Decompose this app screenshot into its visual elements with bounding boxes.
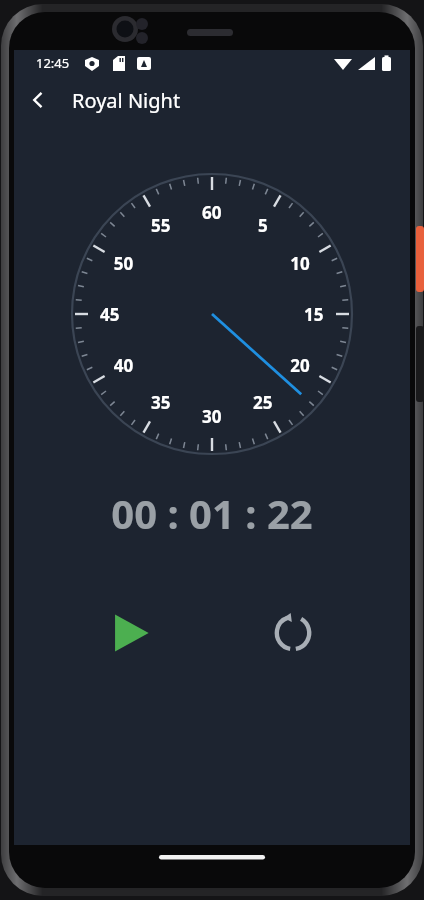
staticText: Royal Night <box>72 87 181 114</box>
button[interactable]: Reset <box>262 602 324 664</box>
button[interactable]: Back <box>14 76 62 124</box>
staticText: 12:45 <box>36 54 70 72</box>
staticText: 00 : 01 : 22 <box>111 486 313 540</box>
button[interactable]: Start <box>100 602 162 664</box>
